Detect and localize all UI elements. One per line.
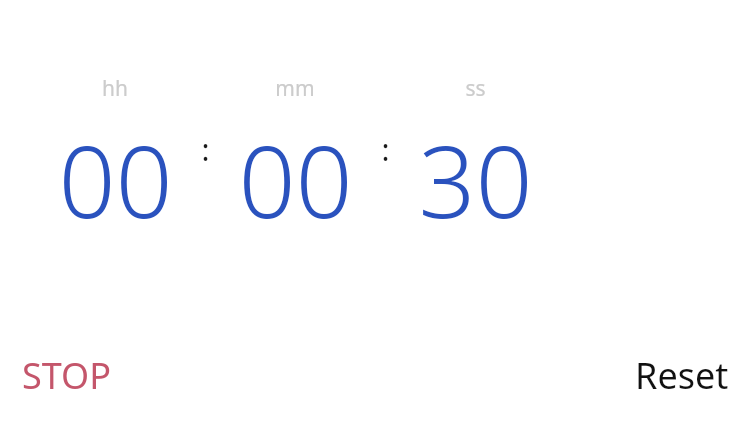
button[interactable]: STOP [0, 345, 123, 406]
button[interactable]: ss [410, 74, 540, 247]
staticText: ss [465, 74, 486, 103]
button[interactable]: Reset [623, 345, 750, 406]
staticText: Reset [635, 351, 729, 400]
staticText: 00 [58, 111, 173, 247]
staticText: : [381, 129, 390, 170]
staticText: 00 [238, 111, 353, 247]
staticText: mm [275, 74, 315, 103]
staticText: hh [102, 74, 128, 103]
button[interactable]: hh [50, 74, 180, 247]
staticText: 30 [418, 111, 533, 247]
button[interactable]: mm [230, 74, 360, 247]
staticText: : [201, 129, 210, 170]
staticText: STOP [22, 351, 111, 400]
